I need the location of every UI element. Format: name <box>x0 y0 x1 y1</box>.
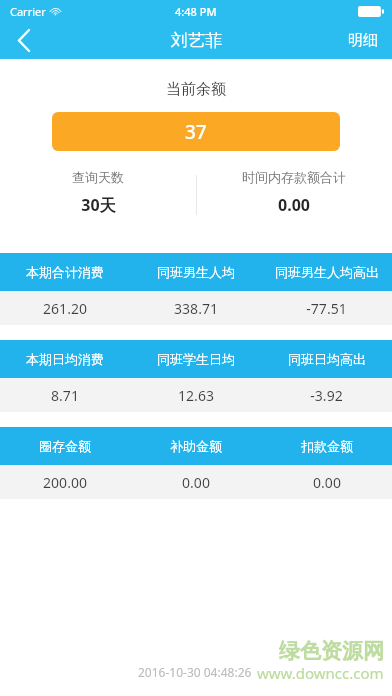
staticText: 本期合计消费 <box>26 264 104 280</box>
staticText: 12.63 <box>178 386 214 405</box>
staticText: 200.00 <box>43 473 87 492</box>
button[interactable]: Back <box>0 22 48 59</box>
staticText: 绿色资源网 <box>279 638 384 664</box>
staticText: -3.92 <box>310 386 343 405</box>
staticText: 当前余额 <box>166 80 226 99</box>
button[interactable]: 查询天数 <box>0 169 196 216</box>
staticText: 查询天数 <box>72 169 124 185</box>
button[interactable]: 0.00 <box>130 465 261 499</box>
button[interactable]: 时间内存款额合计 <box>196 169 392 216</box>
button[interactable]: 0.00 <box>261 465 392 499</box>
button[interactable]: 补助金额 <box>130 427 261 465</box>
staticText: 0.00 <box>278 194 310 216</box>
staticText: 8.71 <box>51 386 79 405</box>
button[interactable]: 同班男生人均高出 <box>261 253 392 291</box>
button[interactable]: 本期合计消费 <box>0 253 130 291</box>
button[interactable]: 扣款金额 <box>261 427 392 465</box>
staticText: 扣款金额 <box>301 438 353 454</box>
staticText: 圈存金额 <box>39 438 91 454</box>
staticText: 261.20 <box>43 299 87 318</box>
staticText: 同班男生人均高出 <box>275 264 379 280</box>
staticText: 同班男生人均 <box>157 264 235 280</box>
staticText: 37 <box>185 119 207 145</box>
staticText: www.downcc.com <box>257 663 384 683</box>
staticText: 明细 <box>348 31 378 50</box>
button[interactable]: 37 <box>52 112 340 151</box>
staticText: 时间内存款额合计 <box>242 169 346 185</box>
button[interactable]: 本期日均消费 <box>0 340 130 378</box>
button[interactable]: 200.00 <box>0 465 130 499</box>
staticText: 338.71 <box>174 299 218 318</box>
staticText: 4:48 PM <box>175 4 217 19</box>
staticText: 刘艺菲 <box>171 30 222 51</box>
button[interactable]: 同班男生人均 <box>130 253 261 291</box>
button[interactable]: 261.20 <box>0 291 130 325</box>
button[interactable]: 圈存金额 <box>0 427 130 465</box>
staticText: 本期日均消费 <box>26 351 104 367</box>
staticText: 2016-10-30 04:48:26 <box>138 664 252 680</box>
staticText: -77.51 <box>306 299 347 318</box>
button[interactable]: 8.71 <box>0 378 130 412</box>
staticText: 同班日均高出 <box>288 351 366 367</box>
button[interactable]: 同班日均高出 <box>261 340 392 378</box>
staticText: 0.00 <box>182 473 210 492</box>
button[interactable]: -3.92 <box>261 378 392 412</box>
staticText: Carrier <box>10 4 46 19</box>
staticText: 0.00 <box>313 473 341 492</box>
staticText: 30天 <box>81 194 116 216</box>
button[interactable]: -77.51 <box>261 291 392 325</box>
staticText: 同班学生日均 <box>157 351 235 367</box>
staticText: 补助金额 <box>170 438 222 454</box>
button[interactable]: 同班学生日均 <box>130 340 261 378</box>
button[interactable]: 12.63 <box>130 378 261 412</box>
button[interactable]: 明细 <box>334 25 392 56</box>
button[interactable]: 338.71 <box>130 291 261 325</box>
